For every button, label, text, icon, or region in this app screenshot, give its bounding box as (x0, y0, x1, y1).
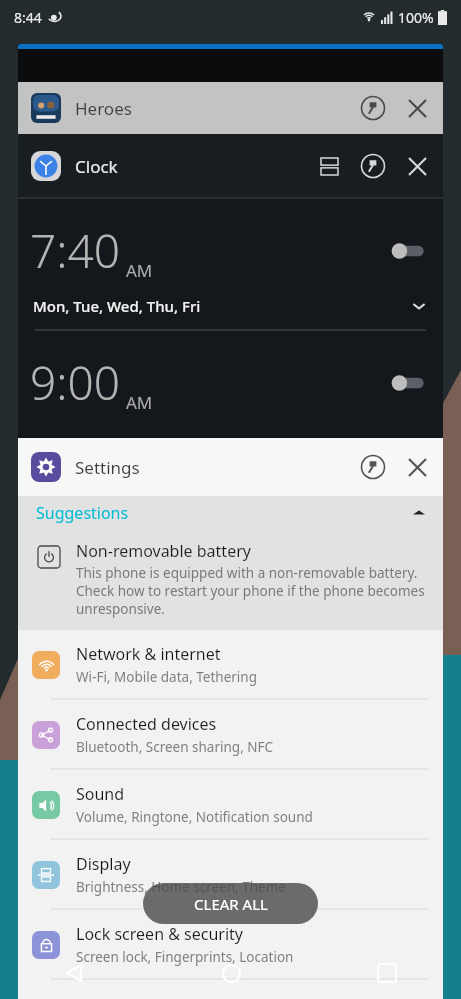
staticText: Settings (75, 456, 140, 479)
button[interactable]: Settings (18, 438, 443, 496)
staticText: Screen lock, Fingerprints, Location (76, 948, 294, 966)
button[interactable]: Display (18, 840, 443, 909)
staticText: Display (76, 853, 131, 875)
staticText: Lock screen & security (76, 923, 243, 945)
button[interactable]: CLEAR ALL (143, 883, 318, 924)
other: Collapse (413, 507, 425, 519)
staticText: Sound (76, 783, 125, 805)
staticText: Brightness, Home screen, Theme (76, 878, 286, 896)
staticText: Network & internet (76, 643, 221, 665)
button[interactable]: Mon, Tue, Wed, Thu, Fri (33, 296, 426, 316)
button[interactable]: Close app (404, 153, 430, 179)
button[interactable]: Sound (18, 770, 443, 839)
staticText: CLEAR ALL (194, 894, 268, 914)
staticText: Heroes (75, 97, 132, 120)
staticText: This phone is equipped with a non-remova… (76, 564, 427, 618)
button[interactable]: Split screen (316, 153, 342, 179)
staticText: Wi-Fi, Mobile data, Tethering (76, 668, 257, 686)
button[interactable]: Lock screen & security (18, 910, 443, 979)
button[interactable]: Back (52, 951, 96, 995)
staticText: Volume, Ringtone, Notification sound (76, 808, 313, 826)
staticText: Non-removable battery (76, 540, 251, 562)
button[interactable]: Connected devices (18, 700, 443, 769)
button[interactable]: Pin app (360, 95, 386, 121)
button[interactable]: Close app (404, 95, 430, 121)
staticText: Connected devices (76, 713, 217, 735)
button[interactable]: Non-removable battery (18, 530, 443, 630)
staticText: Clock (75, 155, 118, 178)
button[interactable]: Close app (404, 454, 430, 480)
button[interactable]: Pin app (360, 454, 386, 480)
staticText: 100% (398, 8, 434, 27)
button[interactable]: Pin app (360, 153, 386, 179)
button[interactable]: Clock (18, 134, 443, 198)
button[interactable]: Recents (365, 951, 409, 995)
button[interactable]: Heroes (18, 82, 443, 134)
staticText: 9:00 (30, 351, 121, 414)
button[interactable]: Home (209, 951, 253, 995)
button[interactable]: Network & internet (18, 630, 443, 699)
button[interactable] (18, 44, 443, 92)
button[interactable]: Alarm toggle (388, 373, 426, 393)
staticText: Bluetooth, Screen sharing, NFC (76, 738, 274, 756)
button[interactable]: Alarm toggle (388, 241, 426, 261)
staticText: Suggestions (36, 502, 129, 524)
staticText: 7:40 (30, 219, 121, 282)
staticText: AM (126, 391, 153, 414)
staticText: AM (126, 259, 153, 282)
button[interactable]: Suggestions (18, 496, 443, 530)
staticText: 8:44 (14, 8, 42, 27)
staticText: Mon, Tue, Wed, Thu, Fri (33, 296, 201, 316)
